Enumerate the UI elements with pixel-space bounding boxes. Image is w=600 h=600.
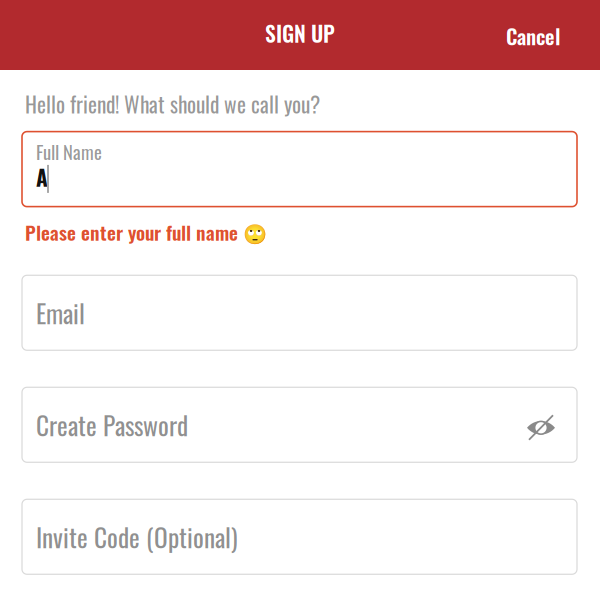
button[interactable]: Invite Code (Optional)	[22, 499, 577, 574]
staticText: A	[36, 161, 48, 193]
staticText: Create Password	[36, 406, 188, 443]
button[interactable]: Cancel	[482, 8, 600, 62]
staticText: SIGN UP	[265, 17, 335, 49]
staticText: Full Name	[36, 138, 102, 165]
button[interactable]: Full Name	[22, 132, 577, 207]
staticText: Email	[36, 294, 85, 331]
staticText: Cancel	[506, 21, 560, 51]
staticText: Invite Code (Optional)	[36, 518, 238, 555]
button[interactable]: Show password	[511, 395, 571, 455]
staticText: Please enter your full name 🙄	[25, 218, 267, 246]
button[interactable]: Create Password	[22, 387, 577, 462]
staticText: Hello friend! What should we call you?	[25, 88, 320, 120]
button[interactable]: Email	[22, 275, 577, 350]
